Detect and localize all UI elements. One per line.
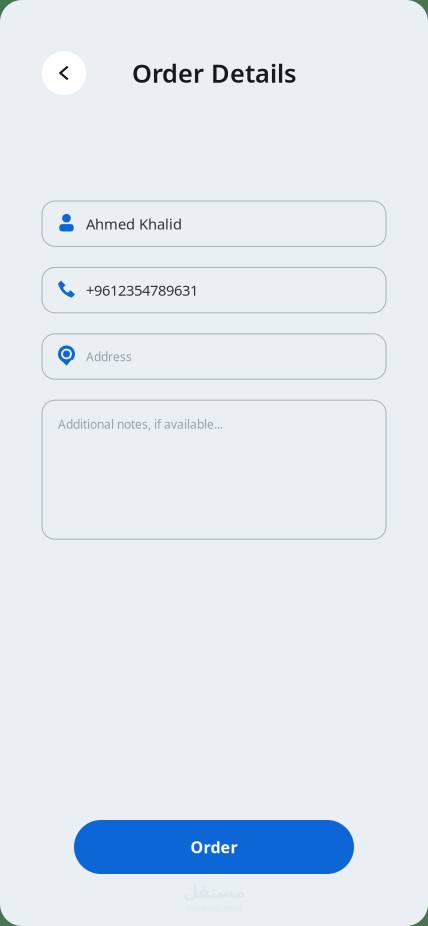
- button[interactable]: Address: [42, 334, 386, 379]
- staticText: Additional notes, if available...: [58, 416, 223, 432]
- staticText: Order Details: [132, 56, 296, 90]
- button[interactable]: Order: [74, 820, 354, 874]
- staticText: مستقل: [182, 882, 245, 902]
- staticText: Ahmed Khalid: [86, 214, 182, 233]
- button[interactable]: +9612354789631: [42, 267, 386, 313]
- button[interactable]: Ahmed Khalid: [42, 201, 386, 246]
- staticText: Order: [190, 836, 237, 858]
- staticText: Address: [86, 348, 132, 364]
- button[interactable]: Back: [42, 51, 86, 95]
- button[interactable]: Additional notes, if available...: [42, 400, 386, 539]
- staticText: +9612354789631: [86, 280, 198, 300]
